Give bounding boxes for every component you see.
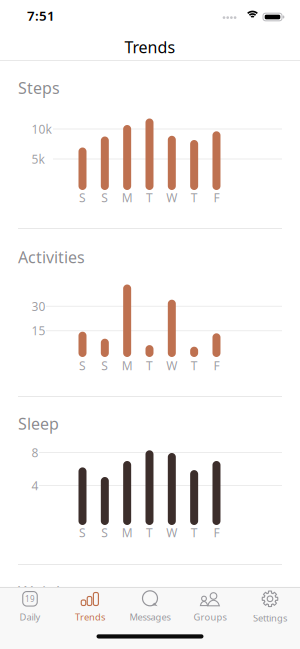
- staticText: S: [79, 524, 86, 540]
- button[interactable]: 19: [0, 586, 60, 628]
- staticText: 19: [25, 594, 35, 604]
- button[interactable]: Trends: [60, 586, 120, 628]
- staticText: T: [191, 524, 198, 540]
- staticText: Activities: [18, 246, 85, 268]
- staticText: M: [122, 524, 133, 540]
- staticText: Weight: [18, 581, 72, 603]
- staticText: 15: [31, 323, 45, 339]
- button[interactable]: Messages: [120, 586, 180, 628]
- staticText: Messages: [129, 611, 170, 623]
- staticText: T: [146, 358, 153, 374]
- staticText: S: [79, 358, 86, 374]
- staticText: 10k: [31, 121, 51, 137]
- staticText: T: [191, 189, 198, 205]
- staticText: F: [213, 358, 219, 374]
- staticText: S: [101, 358, 108, 374]
- staticText: Steps: [18, 77, 60, 98]
- staticText: T: [191, 358, 198, 374]
- staticText: M: [122, 189, 133, 205]
- staticText: W: [166, 358, 177, 374]
- button[interactable]: Settings: [240, 586, 300, 628]
- staticText: 5k: [31, 151, 44, 167]
- staticText: 4: [31, 477, 38, 493]
- staticText: 7:51: [27, 7, 55, 24]
- staticText: S: [101, 189, 108, 205]
- staticText: W: [166, 189, 177, 205]
- staticText: Trends: [124, 36, 175, 58]
- staticText: Groups: [193, 611, 226, 623]
- staticText: F: [213, 189, 219, 205]
- staticText: T: [146, 189, 153, 205]
- staticText: 30: [31, 298, 45, 314]
- button[interactable]: Groups: [180, 586, 240, 628]
- staticText: S: [101, 524, 108, 540]
- staticText: W: [166, 524, 177, 540]
- staticText: S: [79, 189, 86, 205]
- staticText: Sleep: [18, 413, 59, 434]
- staticText: F: [213, 524, 219, 540]
- staticText: Daily: [19, 611, 40, 623]
- staticText: T: [146, 524, 153, 540]
- staticText: Trends: [75, 611, 105, 623]
- staticText: Settings: [253, 612, 287, 624]
- staticText: M: [122, 358, 133, 374]
- staticText: 8: [31, 444, 38, 460]
